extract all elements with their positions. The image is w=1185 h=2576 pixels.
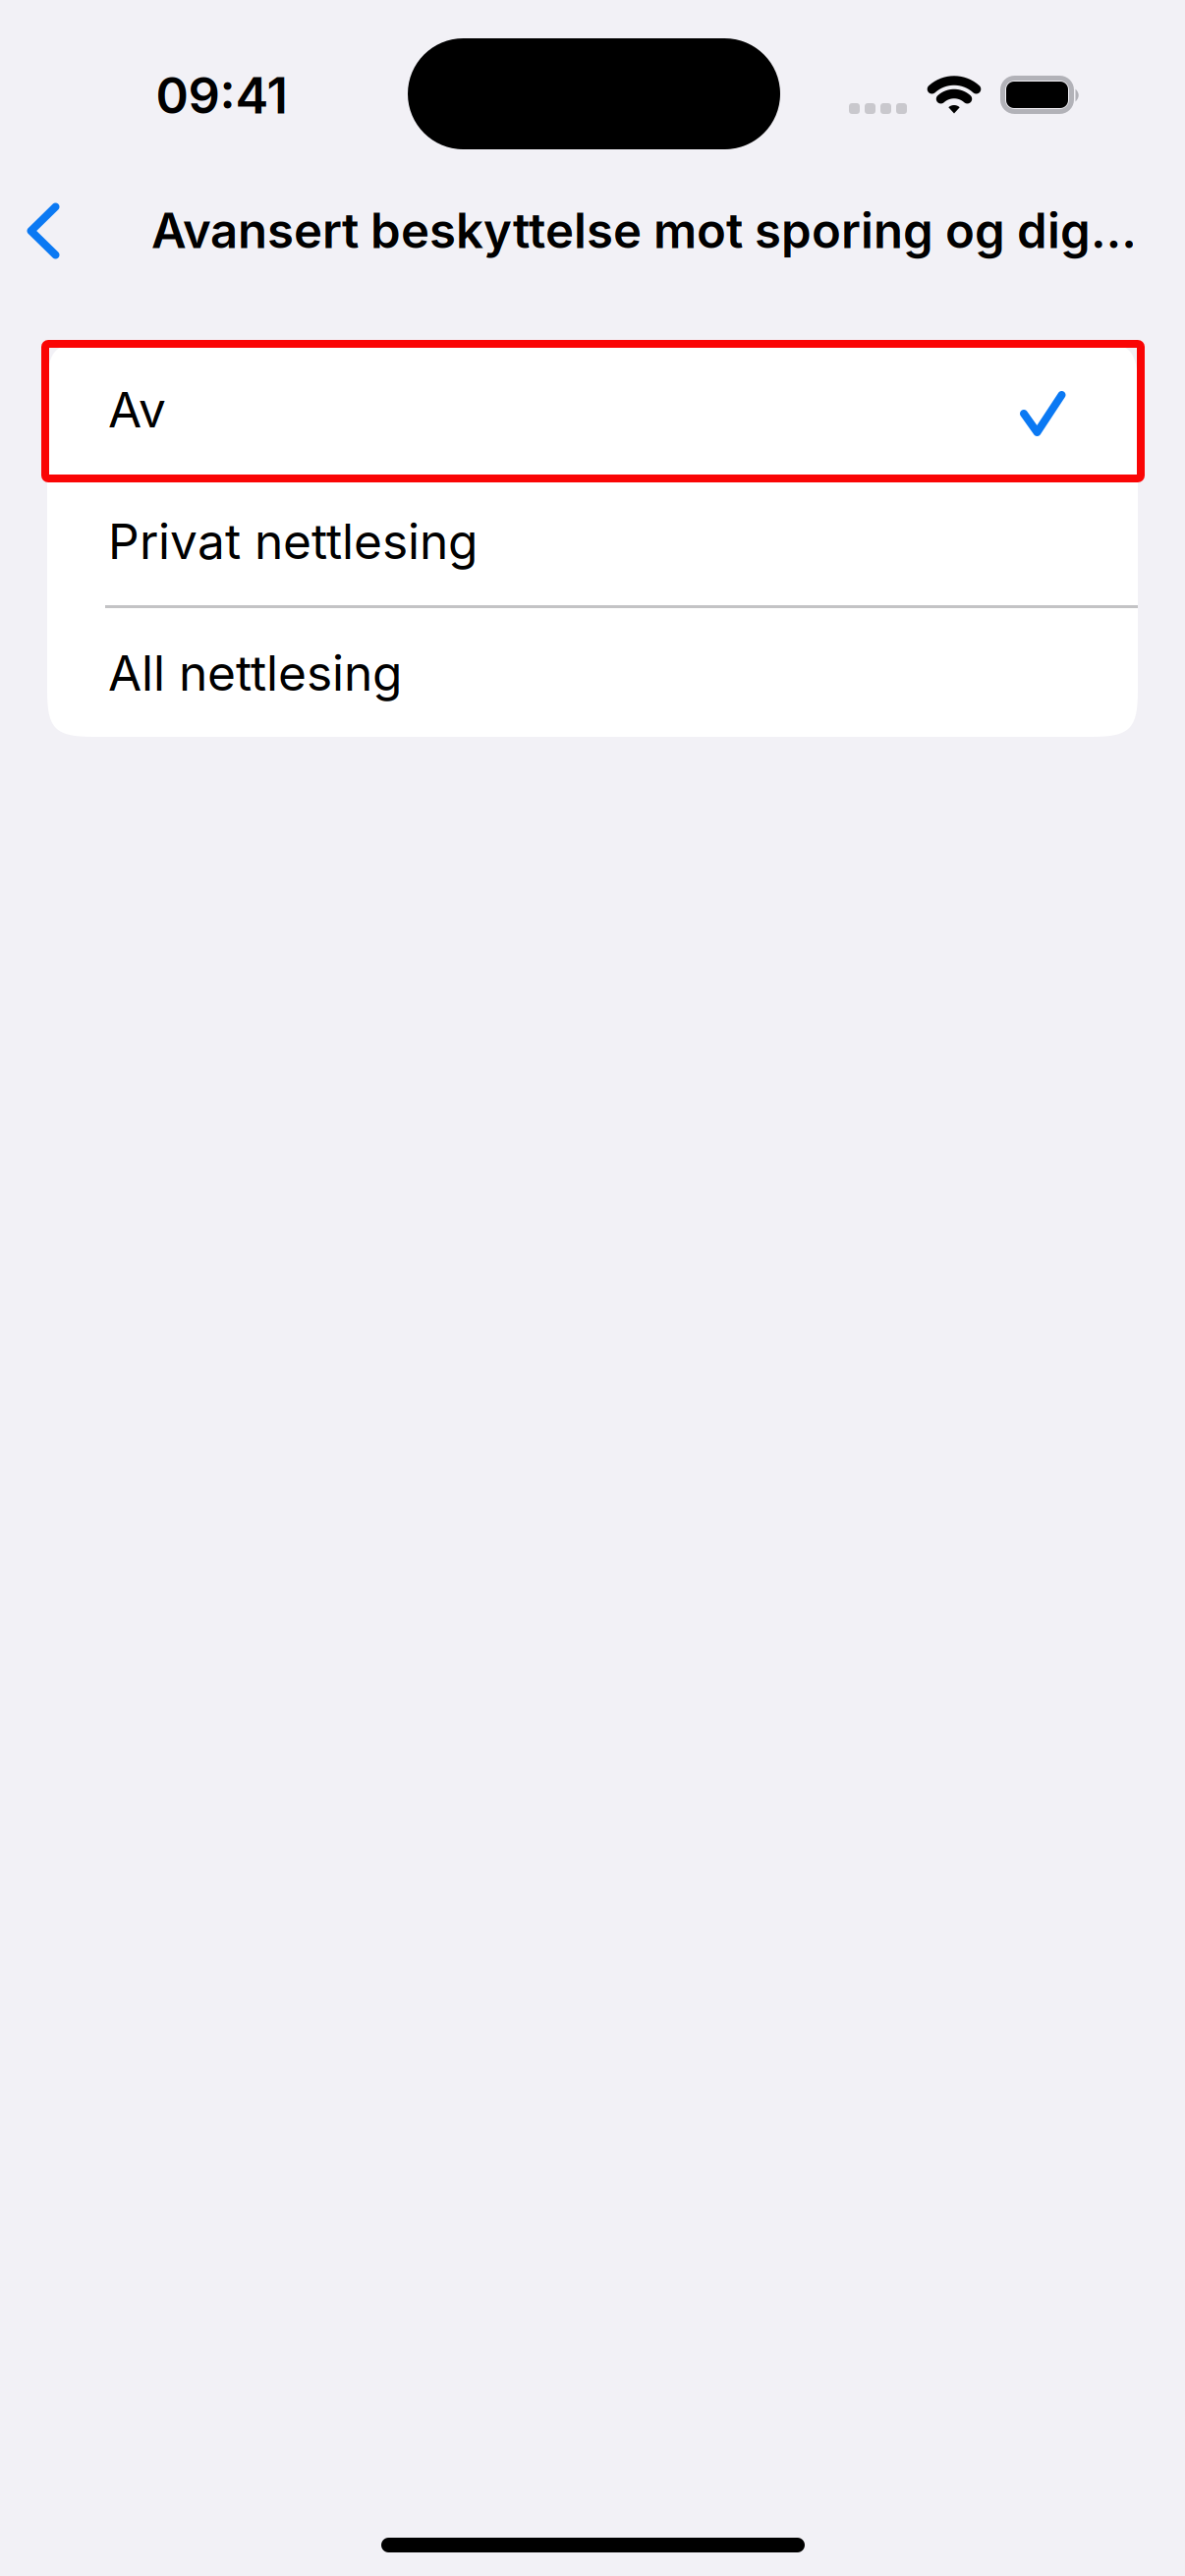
staticText: Privat nettlesing: [108, 512, 478, 571]
button[interactable]: Privat nettlesing: [47, 474, 1138, 605]
staticText: Avansert beskyttelse mot sporing og dig…: [151, 201, 1137, 260]
staticText: All nettlesing: [108, 644, 402, 702]
button[interactable]: Av: [47, 342, 1138, 474]
button[interactable]: Back: [0, 175, 99, 287]
staticText: Av: [108, 380, 166, 439]
button[interactable]: All nettlesing: [47, 605, 1138, 737]
staticText: 09:41: [156, 65, 287, 125]
